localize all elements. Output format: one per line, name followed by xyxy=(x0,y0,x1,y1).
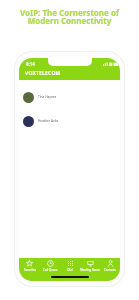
button[interactable]: Contacts xyxy=(100,260,120,272)
button[interactable]: Tina Haynes xyxy=(19,85,120,109)
button[interactable]: Meeting Room xyxy=(80,260,100,272)
button[interactable]: Heather Avila xyxy=(19,109,120,133)
staticText: Heather Avila xyxy=(38,119,59,123)
staticText: VoIP: The Cornerstone of Modern Connecti… xyxy=(0,7,139,26)
staticText: Favorites xyxy=(24,268,36,272)
staticText: Contacts xyxy=(104,268,116,272)
button[interactable]: Favorites xyxy=(19,260,40,272)
staticText: Dial xyxy=(67,268,73,272)
staticText: VOXTELECOM xyxy=(25,70,61,77)
staticText: Tina Haynes xyxy=(38,95,57,99)
staticText: Meeting Room xyxy=(80,268,100,272)
button[interactable]: Call Queue xyxy=(40,260,60,272)
staticText: 8:14 xyxy=(26,61,35,67)
staticText: Call Queue xyxy=(43,268,58,272)
button[interactable]: Dial xyxy=(60,260,80,272)
